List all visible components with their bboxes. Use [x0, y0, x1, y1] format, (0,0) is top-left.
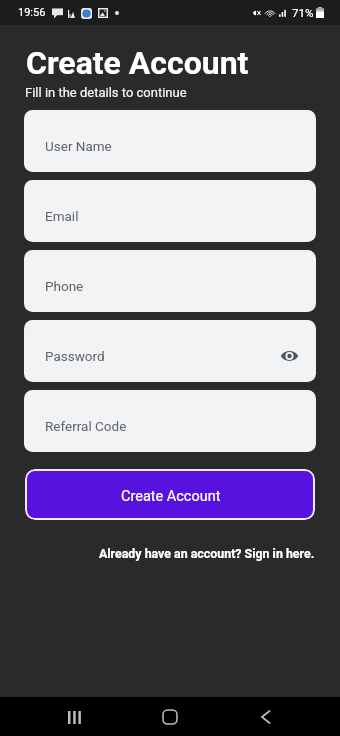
button[interactable]: Email [24, 180, 316, 242]
staticText: User Name [45, 138, 112, 154]
staticText: Email [45, 208, 79, 224]
button[interactable]: Back [249, 701, 281, 733]
button[interactable]: Create Account [25, 469, 315, 520]
button[interactable]: Referral Code [24, 390, 316, 452]
staticText: 71% [292, 6, 314, 19]
button[interactable]: Home [154, 701, 186, 733]
button[interactable]: Phone [24, 250, 316, 312]
staticText: Create Account [26, 44, 249, 82]
button[interactable]: Password [24, 320, 316, 382]
staticText: Fill in the details to continue [25, 85, 187, 100]
button[interactable]: User Name [24, 110, 316, 172]
staticText: Password [45, 348, 105, 364]
staticText: Referral Code [45, 418, 127, 434]
button[interactable]: Recents [58, 701, 90, 733]
button[interactable]: Already have an account? Sign in here. [99, 546, 340, 561]
staticText: Create Account [121, 488, 221, 505]
staticText: Phone [45, 278, 84, 294]
staticText: 19:56 [18, 6, 46, 19]
button[interactable]: Show password [276, 343, 302, 369]
